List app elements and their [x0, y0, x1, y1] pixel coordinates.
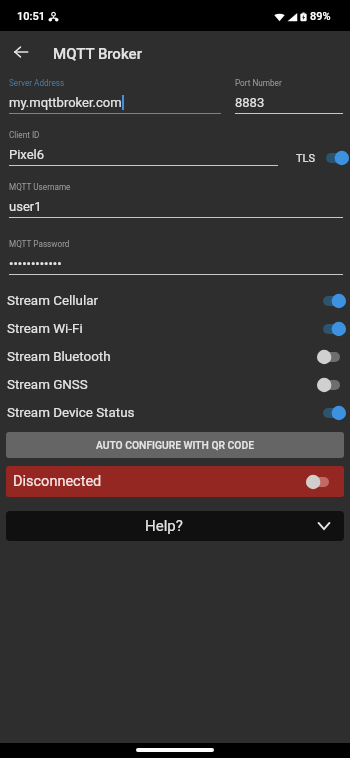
staticText: Stream Device Status	[7, 405, 135, 421]
staticText: TLS	[296, 152, 316, 165]
staticText: ••••••••••••	[9, 256, 62, 271]
staticText: 89%	[310, 10, 331, 23]
staticText: Stream Bluetooth	[7, 349, 111, 365]
staticText: MQTT Broker	[53, 45, 142, 63]
staticText: Port Number	[235, 78, 282, 88]
staticText: Stream Wi-Fi	[7, 321, 83, 337]
button[interactable]: Help?	[6, 511, 344, 541]
button[interactable]: TLS	[296, 150, 349, 166]
button[interactable]: Toggle	[317, 321, 346, 337]
staticText: user1	[9, 199, 42, 214]
button[interactable]: Disconnected	[6, 466, 344, 497]
other: Expand	[317, 519, 331, 533]
staticText: Pixel6	[9, 147, 45, 162]
staticText: Stream Cellular	[7, 293, 98, 309]
button[interactable]: Toggle	[317, 349, 346, 365]
staticText: 10:51	[17, 10, 45, 23]
button[interactable]: Stream Cellular	[0, 287, 350, 315]
staticText: Client ID	[9, 130, 40, 140]
staticText: Disconnected	[13, 473, 102, 490]
button[interactable]: Toggle	[317, 377, 346, 393]
button[interactable]: Stream Wi-Fi	[0, 315, 350, 343]
staticText: MQTT Username	[9, 182, 71, 192]
staticText: Help?	[145, 517, 183, 535]
staticText: Server Address	[9, 78, 65, 88]
button[interactable]: AUTO CONFIGURE WITH QR CODE	[6, 432, 344, 458]
button[interactable]: Toggle	[306, 474, 335, 490]
staticText: MQTT Password	[9, 239, 70, 249]
button[interactable]: Stream GNSS	[0, 371, 350, 399]
staticText: Stream GNSS	[7, 377, 88, 393]
staticText: my.mqttbroker.com	[9, 95, 122, 110]
button[interactable]: Toggle	[317, 405, 346, 421]
button[interactable]: Back	[6, 37, 36, 67]
staticText: AUTO CONFIGURE WITH QR CODE	[96, 439, 254, 451]
button[interactable]: Toggle	[320, 150, 349, 166]
button[interactable]: Toggle	[317, 293, 346, 309]
button[interactable]: Stream Bluetooth	[0, 343, 350, 371]
staticText: 8883	[235, 95, 265, 110]
button[interactable]: Stream Device Status	[0, 399, 350, 427]
